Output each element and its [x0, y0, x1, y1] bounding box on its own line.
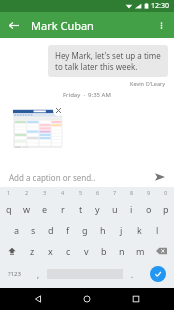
staticText: , — [37, 269, 40, 280]
button[interactable]: Recents — [125, 288, 147, 310]
button[interactable]: k — [130, 219, 148, 240]
staticText: Friday · 9:35 AM — [63, 91, 111, 99]
staticText: 2 — [25, 189, 29, 196]
staticText: r — [61, 203, 65, 215]
button[interactable]: g — [76, 219, 94, 240]
button[interactable]: l — [148, 219, 166, 240]
staticText: 12:30 — [151, 1, 169, 11]
staticText: 1 — [7, 189, 11, 196]
button[interactable]: 7 — [106, 187, 123, 198]
button[interactable]: Back — [0, 12, 26, 38]
button[interactable]: 2 — [18, 187, 36, 198]
button[interactable]: y — [89, 198, 106, 219]
button[interactable]: Remove attachment — [53, 105, 64, 116]
staticText: q — [6, 203, 12, 215]
button[interactable]: p — [157, 198, 174, 219]
button[interactable]: m — [131, 240, 149, 261]
button[interactable]: Send — [150, 167, 170, 187]
button[interactable]: Attachment preview — [13, 109, 62, 148]
button[interactable]: More options — [148, 12, 174, 38]
button[interactable]: 5 — [72, 187, 89, 198]
staticText: f — [66, 224, 70, 236]
staticText: n — [119, 245, 125, 257]
button[interactable]: Back — [27, 288, 49, 310]
button[interactable]: d — [42, 219, 59, 240]
staticText: 7 — [113, 189, 117, 196]
staticText: p — [163, 203, 169, 215]
button[interactable]: 6 — [89, 187, 106, 198]
staticText: o — [146, 203, 152, 215]
button[interactable]: i — [123, 198, 140, 219]
staticText: k — [137, 224, 142, 236]
button[interactable]: r — [54, 198, 72, 219]
staticText: Hey Mark, let's set up a time to talk la… — [55, 50, 161, 72]
staticText: g — [82, 224, 88, 236]
button[interactable]: 4 — [54, 187, 72, 198]
staticText: Mark Cuban — [31, 18, 94, 33]
button[interactable]: j — [112, 219, 130, 240]
staticText: h — [100, 224, 106, 236]
staticText: Add a caption or send.. — [9, 172, 96, 183]
button[interactable]: n — [113, 240, 131, 261]
button[interactable]: 1 — [0, 187, 18, 198]
button[interactable]: h — [94, 219, 112, 240]
button[interactable]: f — [59, 219, 76, 240]
staticText: 9 — [147, 189, 151, 196]
staticText: ?123 — [8, 270, 21, 278]
button[interactable]: e — [36, 198, 54, 219]
staticText: 5 — [79, 189, 83, 196]
button[interactable]: t — [72, 198, 89, 219]
staticText: 6 — [96, 189, 100, 196]
button[interactable]: Backspace — [149, 240, 174, 261]
button[interactable]: 8 — [123, 187, 140, 198]
button[interactable]: Shift — [0, 240, 24, 261]
staticText: l — [156, 224, 159, 236]
button[interactable]: v — [77, 240, 95, 261]
staticText: a — [14, 224, 20, 236]
button[interactable]: 0 — [157, 187, 174, 198]
staticText: 8 — [130, 189, 134, 196]
staticText: i — [130, 203, 133, 215]
staticText: c — [66, 245, 71, 257]
staticText: 0 — [164, 189, 168, 196]
button[interactable]: Hey Mark, let's set up a time to talk la… — [48, 45, 168, 77]
staticText: s — [31, 224, 36, 236]
button[interactable]: Confirm — [141, 261, 174, 287]
button[interactable]: c — [59, 240, 77, 261]
staticText: Kevin O'Leary — [130, 80, 166, 87]
button[interactable]: u — [106, 198, 123, 219]
staticText: u — [112, 203, 118, 215]
button[interactable]: Comma — [29, 261, 47, 287]
button[interactable]: z — [24, 240, 41, 261]
staticText: d — [48, 224, 54, 236]
staticText: 4 — [61, 189, 65, 196]
staticText: j — [120, 224, 123, 236]
button[interactable]: ?123 — [0, 261, 29, 287]
staticText: e — [42, 203, 48, 215]
button[interactable]: b — [95, 240, 113, 261]
button[interactable]: Period — [123, 261, 141, 287]
button[interactable]: q — [0, 198, 18, 219]
button[interactable]: s — [25, 219, 42, 240]
button[interactable]: x — [41, 240, 59, 261]
staticText: x — [48, 245, 53, 257]
button[interactable]: Add a caption or send.. — [9, 172, 150, 183]
staticText: m — [136, 245, 145, 257]
staticText: v — [84, 245, 89, 257]
staticText: t — [79, 203, 83, 215]
staticText: y — [95, 203, 100, 215]
staticText: . — [131, 269, 134, 280]
button[interactable]: Home — [76, 288, 98, 310]
button[interactable]: o — [140, 198, 157, 219]
staticText: b — [101, 245, 107, 257]
button[interactable]: a — [8, 219, 25, 240]
button[interactable]: 9 — [140, 187, 157, 198]
button[interactable]: 3 — [36, 187, 54, 198]
staticText: z — [30, 245, 35, 257]
button[interactable]: w — [18, 198, 36, 219]
staticText: w — [23, 203, 31, 215]
staticText: 3 — [43, 189, 47, 196]
